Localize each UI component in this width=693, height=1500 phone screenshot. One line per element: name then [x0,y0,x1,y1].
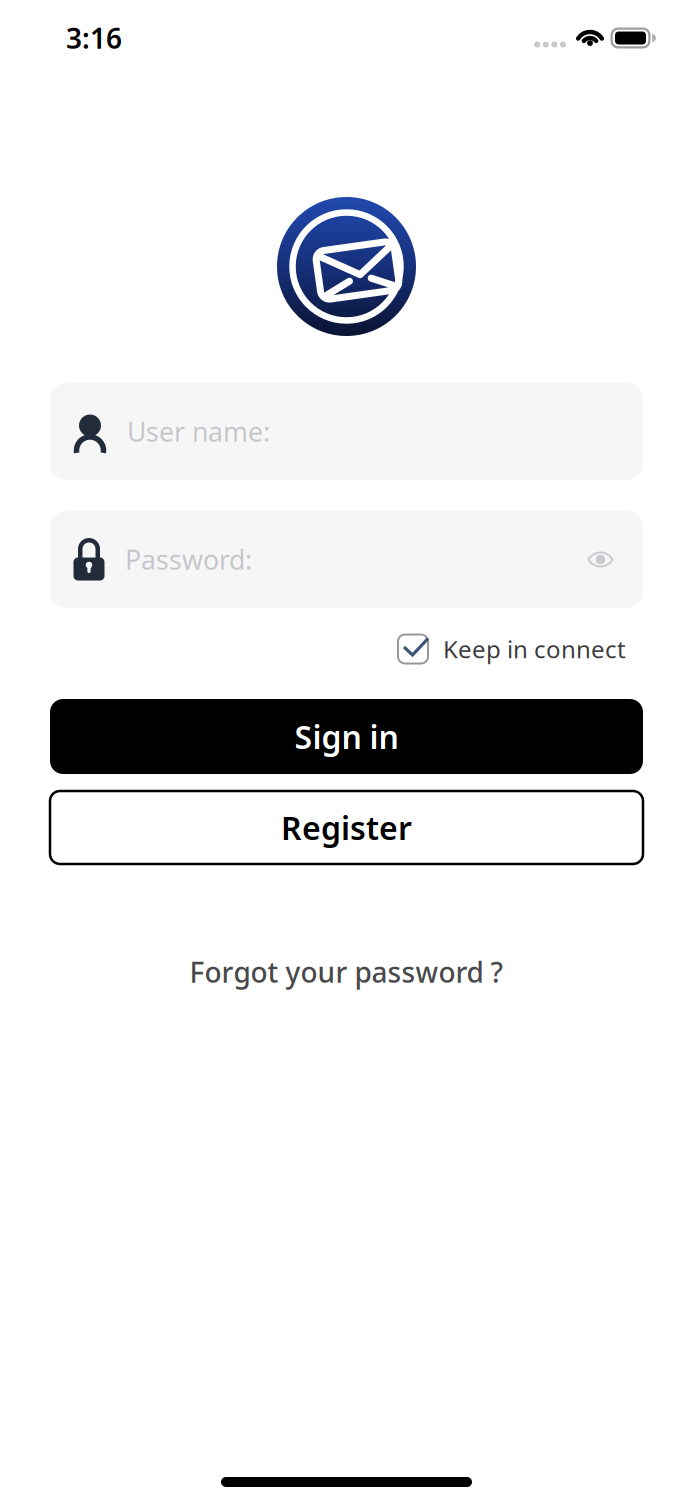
button[interactable]: Keep in connect [398,634,626,664]
staticText: Sign in [294,715,398,758]
button[interactable]: Register [50,791,643,864]
button[interactable]: User name: [50,383,643,480]
button[interactable]: Password: [50,511,643,608]
staticText: Forgot your password ? [189,953,503,991]
button[interactable]: Forgot your password ? [189,950,503,994]
button[interactable]: Show password [588,551,643,568]
staticText: Keep in connect [443,633,626,665]
staticText: 3:16 [66,19,122,57]
staticText: Register [281,806,412,849]
staticText: Password: [125,542,252,577]
staticText: User name: [127,414,270,449]
button[interactable]: Sign in [50,699,643,774]
